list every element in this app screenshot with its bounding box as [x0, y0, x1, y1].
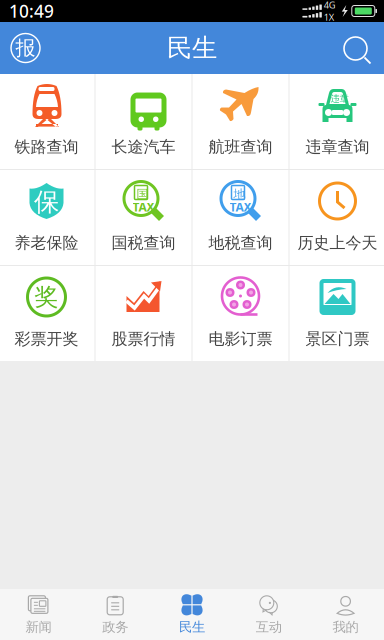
staticText: 互动: [256, 619, 282, 635]
button[interactable]: 地: [192, 170, 288, 265]
staticText: 历史上今天: [297, 233, 377, 253]
staticText: 保: [34, 186, 59, 217]
button[interactable]: 互动: [230, 587, 307, 640]
staticText: 地: [233, 187, 245, 202]
staticText: 电影订票: [208, 329, 272, 349]
staticText: 政务: [102, 619, 128, 635]
staticText: TAX: [229, 199, 251, 215]
button[interactable]: 违章: [289, 74, 384, 169]
button[interactable]: 政务: [77, 587, 154, 640]
staticText: 国税查询: [111, 233, 175, 253]
staticText: 我的: [333, 619, 359, 635]
staticText: 奖: [34, 282, 58, 312]
staticText: 4G: [324, 0, 336, 11]
button[interactable]: 长途汽车: [95, 74, 191, 169]
staticText: 违章: [330, 93, 348, 104]
button[interactable]: 新闻: [0, 587, 77, 640]
button[interactable]: 国: [95, 170, 191, 265]
staticText: 民生: [167, 32, 217, 63]
staticText: 景区门票: [305, 329, 369, 349]
button[interactable]: 我的: [307, 587, 384, 640]
staticText: 地税查询: [208, 233, 272, 253]
staticText: 违章查询: [305, 137, 369, 157]
staticText: 长途汽车: [111, 137, 175, 157]
button[interactable]: 奖: [0, 266, 94, 361]
staticText: 铁路查询: [14, 137, 78, 157]
staticText: 航班查询: [208, 137, 272, 157]
button[interactable]: 民生: [154, 587, 230, 640]
button[interactable]: 历史上今天: [289, 170, 384, 265]
button[interactable]: 航班查询: [192, 74, 288, 169]
button[interactable]: 保: [0, 170, 94, 265]
button[interactable]: 景区门票: [289, 266, 384, 361]
staticText: 10:49: [9, 0, 54, 22]
button[interactable]: Search: [332, 24, 384, 72]
button[interactable]: 电影订票: [192, 266, 288, 361]
staticText: 1X: [324, 11, 334, 23]
staticText: 养老保险: [14, 233, 78, 253]
staticText: 新闻: [25, 619, 51, 635]
staticText: 报: [15, 36, 35, 60]
staticText: 股票行情: [111, 329, 175, 349]
button[interactable]: 股票行情: [95, 266, 191, 361]
button[interactable]: 铁路查询: [0, 74, 94, 169]
button[interactable]: 报 Home: [0, 24, 52, 71]
staticText: 民生: [179, 619, 205, 635]
staticText: 国: [136, 187, 148, 202]
staticText: TAX: [132, 199, 154, 215]
staticText: 彩票开奖: [14, 329, 78, 349]
